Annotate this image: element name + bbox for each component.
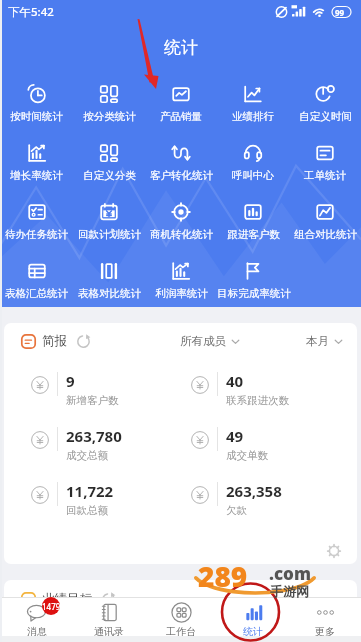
staticText: 表格汇总统计 bbox=[5, 287, 68, 300]
button[interactable]: 1479 bbox=[0, 598, 73, 642]
staticText: 49 bbox=[226, 426, 244, 446]
button[interactable]: 工单统计 bbox=[289, 131, 361, 190]
staticText: 工单统计 bbox=[304, 169, 346, 182]
staticText: 利润率统计 bbox=[155, 287, 208, 300]
staticText: 更多 bbox=[315, 625, 335, 638]
staticText: 商机转化统计 bbox=[150, 228, 213, 241]
staticText: 1479 bbox=[42, 601, 60, 612]
staticText: 手游网 bbox=[270, 583, 309, 599]
staticText: 自定义分类 bbox=[83, 169, 136, 182]
staticText: 客户转化统计 bbox=[150, 169, 213, 182]
staticText: 跟进客户数 bbox=[227, 228, 280, 241]
button[interactable]: 通讯录 bbox=[73, 598, 145, 642]
button[interactable]: 业绩排行 bbox=[217, 72, 289, 131]
staticText: 99 bbox=[335, 7, 345, 18]
staticText: 按时间统计 bbox=[10, 110, 63, 123]
staticText: 新增客户数 bbox=[66, 394, 119, 407]
staticText: 工作台 bbox=[166, 625, 196, 638]
staticText: 成交总额 bbox=[66, 449, 108, 462]
button[interactable]: 40 bbox=[180, 361, 357, 416]
staticText: 呼叫中心 bbox=[232, 169, 274, 182]
button[interactable]: 本月 bbox=[306, 330, 343, 352]
staticText: .com bbox=[269, 562, 311, 585]
staticText: 统计 bbox=[164, 37, 198, 58]
button[interactable]: 设置 bbox=[327, 544, 341, 558]
button[interactable]: 更多 bbox=[289, 598, 361, 642]
staticText: 产品销量 bbox=[160, 110, 202, 123]
staticText: 下午5:42 bbox=[8, 4, 54, 20]
button[interactable]: 商机转化统计 bbox=[145, 190, 217, 249]
staticText: 组合对比统计 bbox=[294, 228, 357, 241]
button[interactable]: 按时间统计 bbox=[0, 72, 73, 131]
staticText: 回款计划统计 bbox=[78, 228, 141, 241]
staticText: 业绩排行 bbox=[232, 110, 274, 123]
button[interactable]: 刷新 bbox=[76, 334, 91, 349]
staticText: 欠款 bbox=[226, 504, 247, 517]
staticText: 联系跟进次数 bbox=[226, 394, 289, 407]
staticText: 289 bbox=[198, 557, 248, 595]
button[interactable]: 按分类统计 bbox=[73, 72, 145, 131]
staticText: 263,780 bbox=[66, 426, 122, 446]
button[interactable]: 9 bbox=[4, 361, 180, 416]
staticText: 简报 bbox=[42, 333, 67, 349]
button[interactable]: 客户转化统计 bbox=[145, 131, 217, 190]
button[interactable]: 263,780 bbox=[4, 416, 180, 471]
button[interactable]: 产品销量 bbox=[145, 72, 217, 131]
staticText: 263,358 bbox=[226, 481, 282, 501]
staticText: 统计 bbox=[243, 625, 263, 638]
button[interactable]: 统计 bbox=[217, 598, 289, 642]
button[interactable]: 自定义分类 bbox=[73, 131, 145, 190]
staticText: 本月 bbox=[306, 334, 329, 348]
button[interactable]: 263,358 bbox=[180, 471, 357, 526]
button[interactable]: 表格对比统计 bbox=[73, 249, 145, 308]
button[interactable]: 组合对比统计 bbox=[289, 190, 361, 249]
staticText: 9 bbox=[66, 371, 75, 391]
staticText: 按分类统计 bbox=[83, 110, 136, 123]
staticText: 所有成员 bbox=[180, 334, 226, 348]
button[interactable]: 回款计划统计 bbox=[73, 190, 145, 249]
staticText: 待办任务统计 bbox=[5, 228, 68, 241]
button[interactable]: 增长率统计 bbox=[0, 131, 73, 190]
button[interactable]: 目标完成率统计 bbox=[217, 249, 289, 308]
button[interactable]: 跟进客户数 bbox=[217, 190, 289, 249]
button[interactable]: 呼叫中心 bbox=[217, 131, 289, 190]
button[interactable]: 利润率统计 bbox=[145, 249, 217, 308]
staticText: 40 bbox=[226, 371, 244, 391]
staticText: 业绩目标 bbox=[42, 591, 92, 607]
button[interactable]: 工作台 bbox=[145, 598, 217, 642]
staticText: 回款总额 bbox=[66, 504, 108, 517]
staticText: 目标完成率统计 bbox=[217, 287, 289, 300]
staticText: 增长率统计 bbox=[10, 169, 63, 182]
button[interactable]: 待办任务统计 bbox=[0, 190, 73, 249]
staticText: 通讯录 bbox=[94, 625, 124, 638]
button[interactable]: 表格汇总统计 bbox=[0, 249, 73, 308]
staticText: 消息 bbox=[27, 625, 47, 638]
staticText: 自定义时间 bbox=[299, 110, 352, 123]
button[interactable]: 11,722 bbox=[4, 471, 180, 526]
staticText: 成交单数 bbox=[226, 449, 268, 462]
button[interactable]: 49 bbox=[180, 416, 357, 471]
button[interactable]: 自定义时间 bbox=[289, 72, 361, 131]
staticText: 表格对比统计 bbox=[78, 287, 141, 300]
staticText: 11,722 bbox=[66, 481, 114, 501]
button[interactable]: 所有成员 bbox=[180, 330, 240, 352]
